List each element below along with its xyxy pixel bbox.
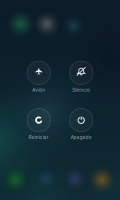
staticText: Reiniciar — [29, 135, 49, 140]
button[interactable]: Reiniciar — [18, 108, 60, 143]
button[interactable]: Avión — [18, 61, 60, 96]
button[interactable]: Silencio — [60, 61, 102, 96]
button[interactable]: Apagado — [60, 108, 102, 143]
staticText: Avión — [32, 87, 45, 93]
staticText: Apagado — [71, 135, 92, 140]
staticText: Silencio — [72, 87, 90, 93]
